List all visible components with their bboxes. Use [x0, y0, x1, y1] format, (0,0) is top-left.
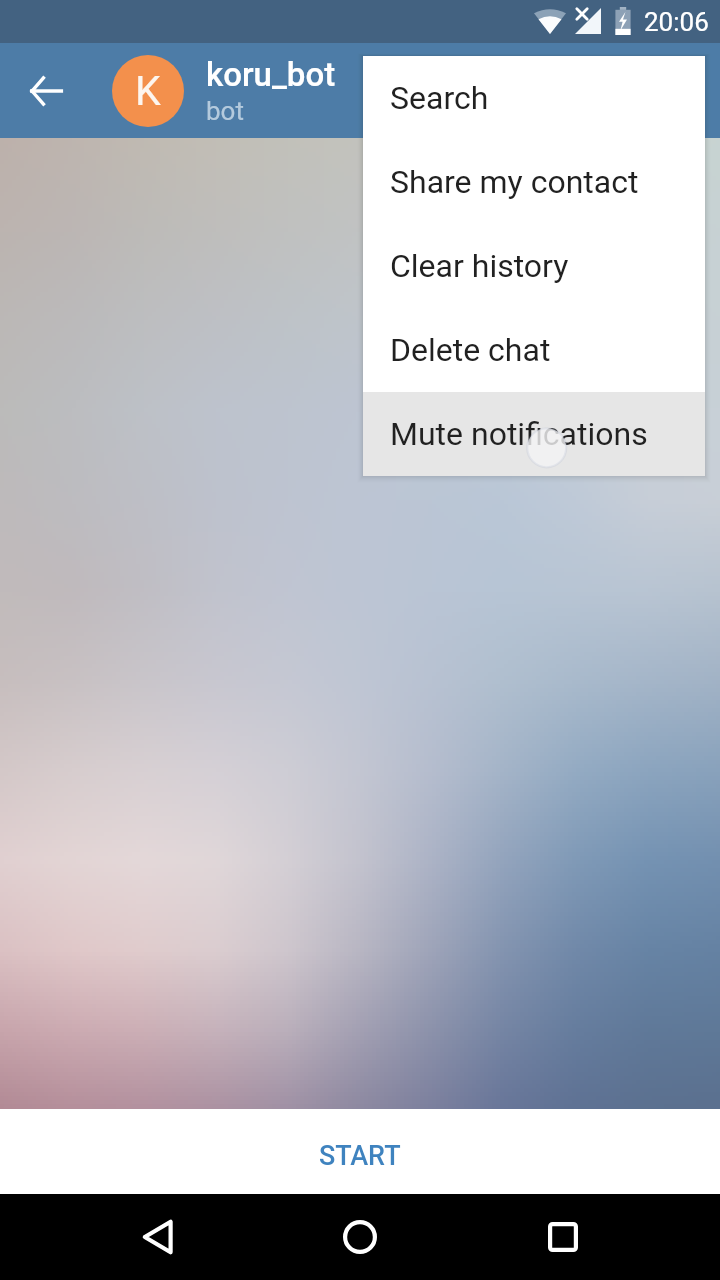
staticText: Share my contact — [390, 163, 639, 201]
button[interactable]: START — [0, 1109, 720, 1194]
staticText: bot — [206, 96, 244, 126]
staticText: K — [135, 67, 161, 115]
staticText: 20:06 — [644, 7, 709, 37]
button[interactable]: Home — [317, 1194, 403, 1280]
staticText: Search — [390, 79, 489, 117]
button[interactable]: Clear history — [363, 224, 705, 308]
button[interactable]: Mute notifications — [363, 392, 705, 476]
staticText: Clear history — [390, 247, 569, 285]
button[interactable]: Back — [10, 55, 82, 127]
staticText: START — [319, 1140, 401, 1172]
staticText: koru_bot — [206, 55, 336, 94]
button[interactable]: Back — [115, 1194, 201, 1280]
button[interactable]: Delete chat — [363, 308, 705, 392]
button[interactable]: Search — [363, 56, 705, 140]
button[interactable]: Share my contact — [363, 140, 705, 224]
staticText: Mute notifications — [390, 415, 648, 453]
button[interactable]: Recents — [520, 1194, 606, 1280]
staticText: Delete chat — [390, 331, 551, 369]
